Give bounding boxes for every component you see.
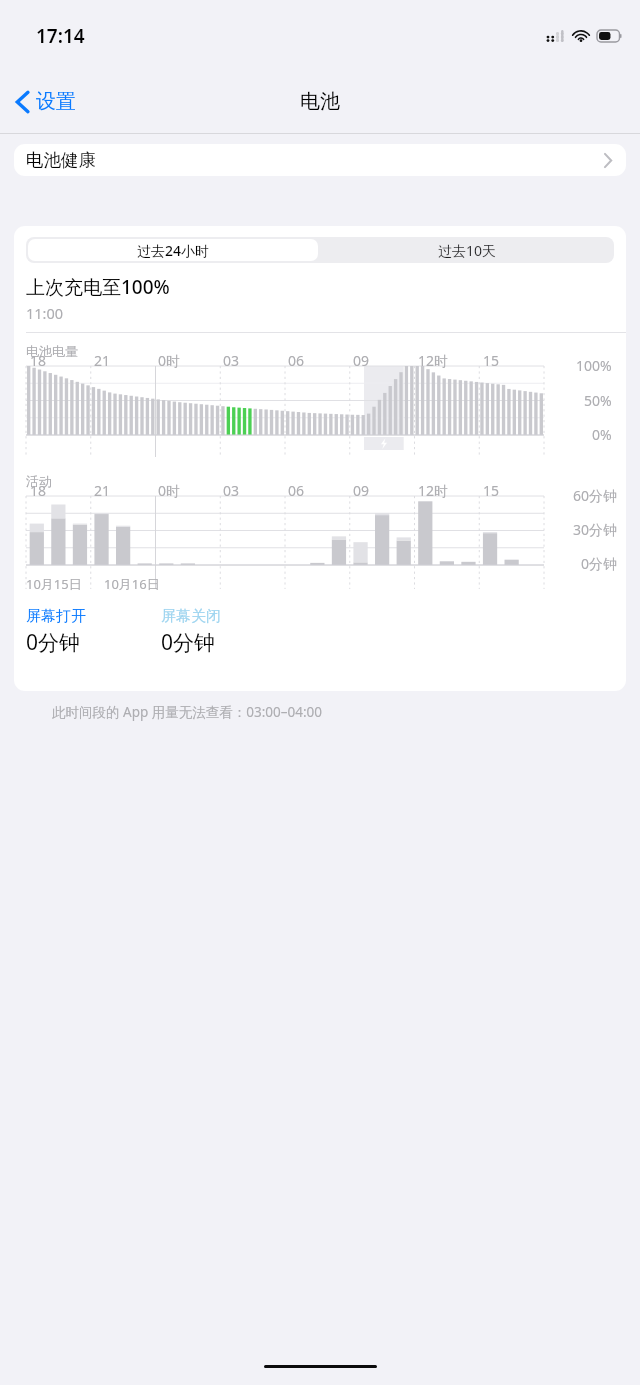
staticText: 12时 xyxy=(418,481,449,500)
staticText: 18 xyxy=(30,351,47,370)
staticText: 设置 xyxy=(36,89,76,114)
staticText: 21 xyxy=(94,481,111,500)
staticText: 0分钟 xyxy=(581,554,618,573)
staticText: 06 xyxy=(288,351,305,370)
staticText: 屏幕打开 xyxy=(26,607,86,626)
staticText: 03 xyxy=(223,481,240,500)
button[interactable]: 返回 xyxy=(0,83,88,120)
staticText: 电池 xyxy=(300,89,340,114)
staticText: 11:00 xyxy=(26,303,64,323)
staticText: 10月16日 xyxy=(104,575,160,593)
staticText: 电池电量 xyxy=(26,343,78,359)
staticText: 0时 xyxy=(158,481,181,500)
button[interactable]: 过去10天 xyxy=(320,237,614,263)
staticText: 03 xyxy=(223,351,240,370)
staticText: 活动 xyxy=(26,473,52,489)
staticText: 过去24小时 xyxy=(137,241,210,260)
staticText: 上次充电至100% xyxy=(26,274,170,300)
staticText: 17:14 xyxy=(36,23,85,49)
staticText: 15 xyxy=(483,351,500,370)
button[interactable]: 电池健康 xyxy=(14,144,626,176)
staticText: 屏幕关闭 xyxy=(161,607,221,626)
staticText: 60分钟 xyxy=(573,486,618,505)
staticText: 50% xyxy=(584,391,612,410)
staticText: 过去10天 xyxy=(438,241,497,260)
staticText: 0% xyxy=(592,425,612,444)
staticText: 0分钟 xyxy=(26,628,81,657)
staticText: 0时 xyxy=(158,351,181,370)
staticText: 21 xyxy=(94,351,111,370)
staticText: 电池健康 xyxy=(26,149,96,171)
staticText: 30分钟 xyxy=(573,520,618,539)
staticText: 09 xyxy=(353,481,370,500)
staticText: 10月15日 xyxy=(26,575,82,593)
staticText: 06 xyxy=(288,481,305,500)
staticText: 15 xyxy=(483,481,500,500)
other: 返回 xyxy=(16,91,29,113)
staticText: 09 xyxy=(353,351,370,370)
staticText: 0分钟 xyxy=(161,628,216,657)
button[interactable]: 过去24小时 xyxy=(28,239,318,261)
staticText: 100% xyxy=(576,356,612,375)
staticText: 12时 xyxy=(418,351,449,370)
staticText: 18 xyxy=(30,481,47,500)
staticText: 此时间段的 App 用量无法查看：03:00–04:00 xyxy=(52,703,323,721)
